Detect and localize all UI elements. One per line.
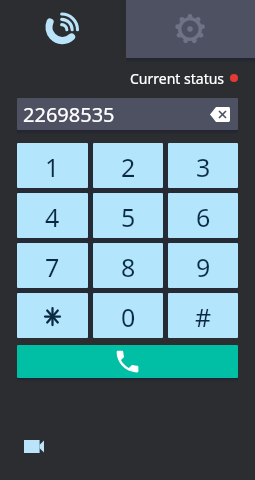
button[interactable]: 5 [93,193,163,238]
button[interactable]: 6 [168,193,238,238]
button[interactable]: 8 [93,243,163,288]
button[interactable]: Dialer tab [0,0,126,58]
staticText: 0 [121,300,136,334]
staticText: Current status [130,69,225,88]
button[interactable]: 0 [93,293,163,338]
button[interactable]: 7 [17,243,88,288]
staticText: 4 [45,200,60,234]
button[interactable]: Backspace [209,105,231,123]
button[interactable]: 2 [93,143,163,188]
staticText: 3 [196,150,211,184]
staticText: 7 [45,250,60,284]
button[interactable]: 3 [168,143,238,188]
staticText: 8 [121,250,136,284]
button[interactable]: 22698535 [17,98,238,130]
button[interactable]: Settings tab [126,0,255,58]
button[interactable]: Call [17,345,238,378]
staticText: 9 [196,250,211,284]
button[interactable]: 1 [17,143,88,188]
button[interactable]: Video call [24,440,44,453]
staticText: # [195,300,212,334]
staticText: 22698535 [23,101,115,128]
staticText: 6 [196,200,211,234]
button[interactable] [17,293,88,338]
staticText: 2 [121,150,136,184]
button[interactable]: # [168,293,238,338]
staticText: 1 [45,150,60,184]
button[interactable]: 4 [17,193,88,238]
staticText: 5 [121,200,136,234]
button[interactable]: 9 [168,243,238,288]
